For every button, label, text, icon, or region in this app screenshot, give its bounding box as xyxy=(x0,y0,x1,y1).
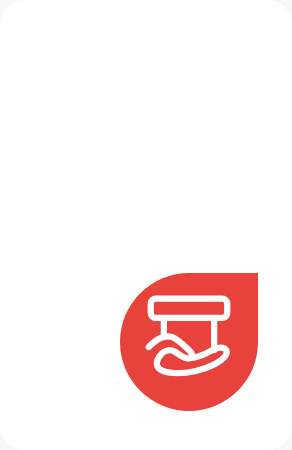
button[interactable]: Service xyxy=(120,273,258,411)
